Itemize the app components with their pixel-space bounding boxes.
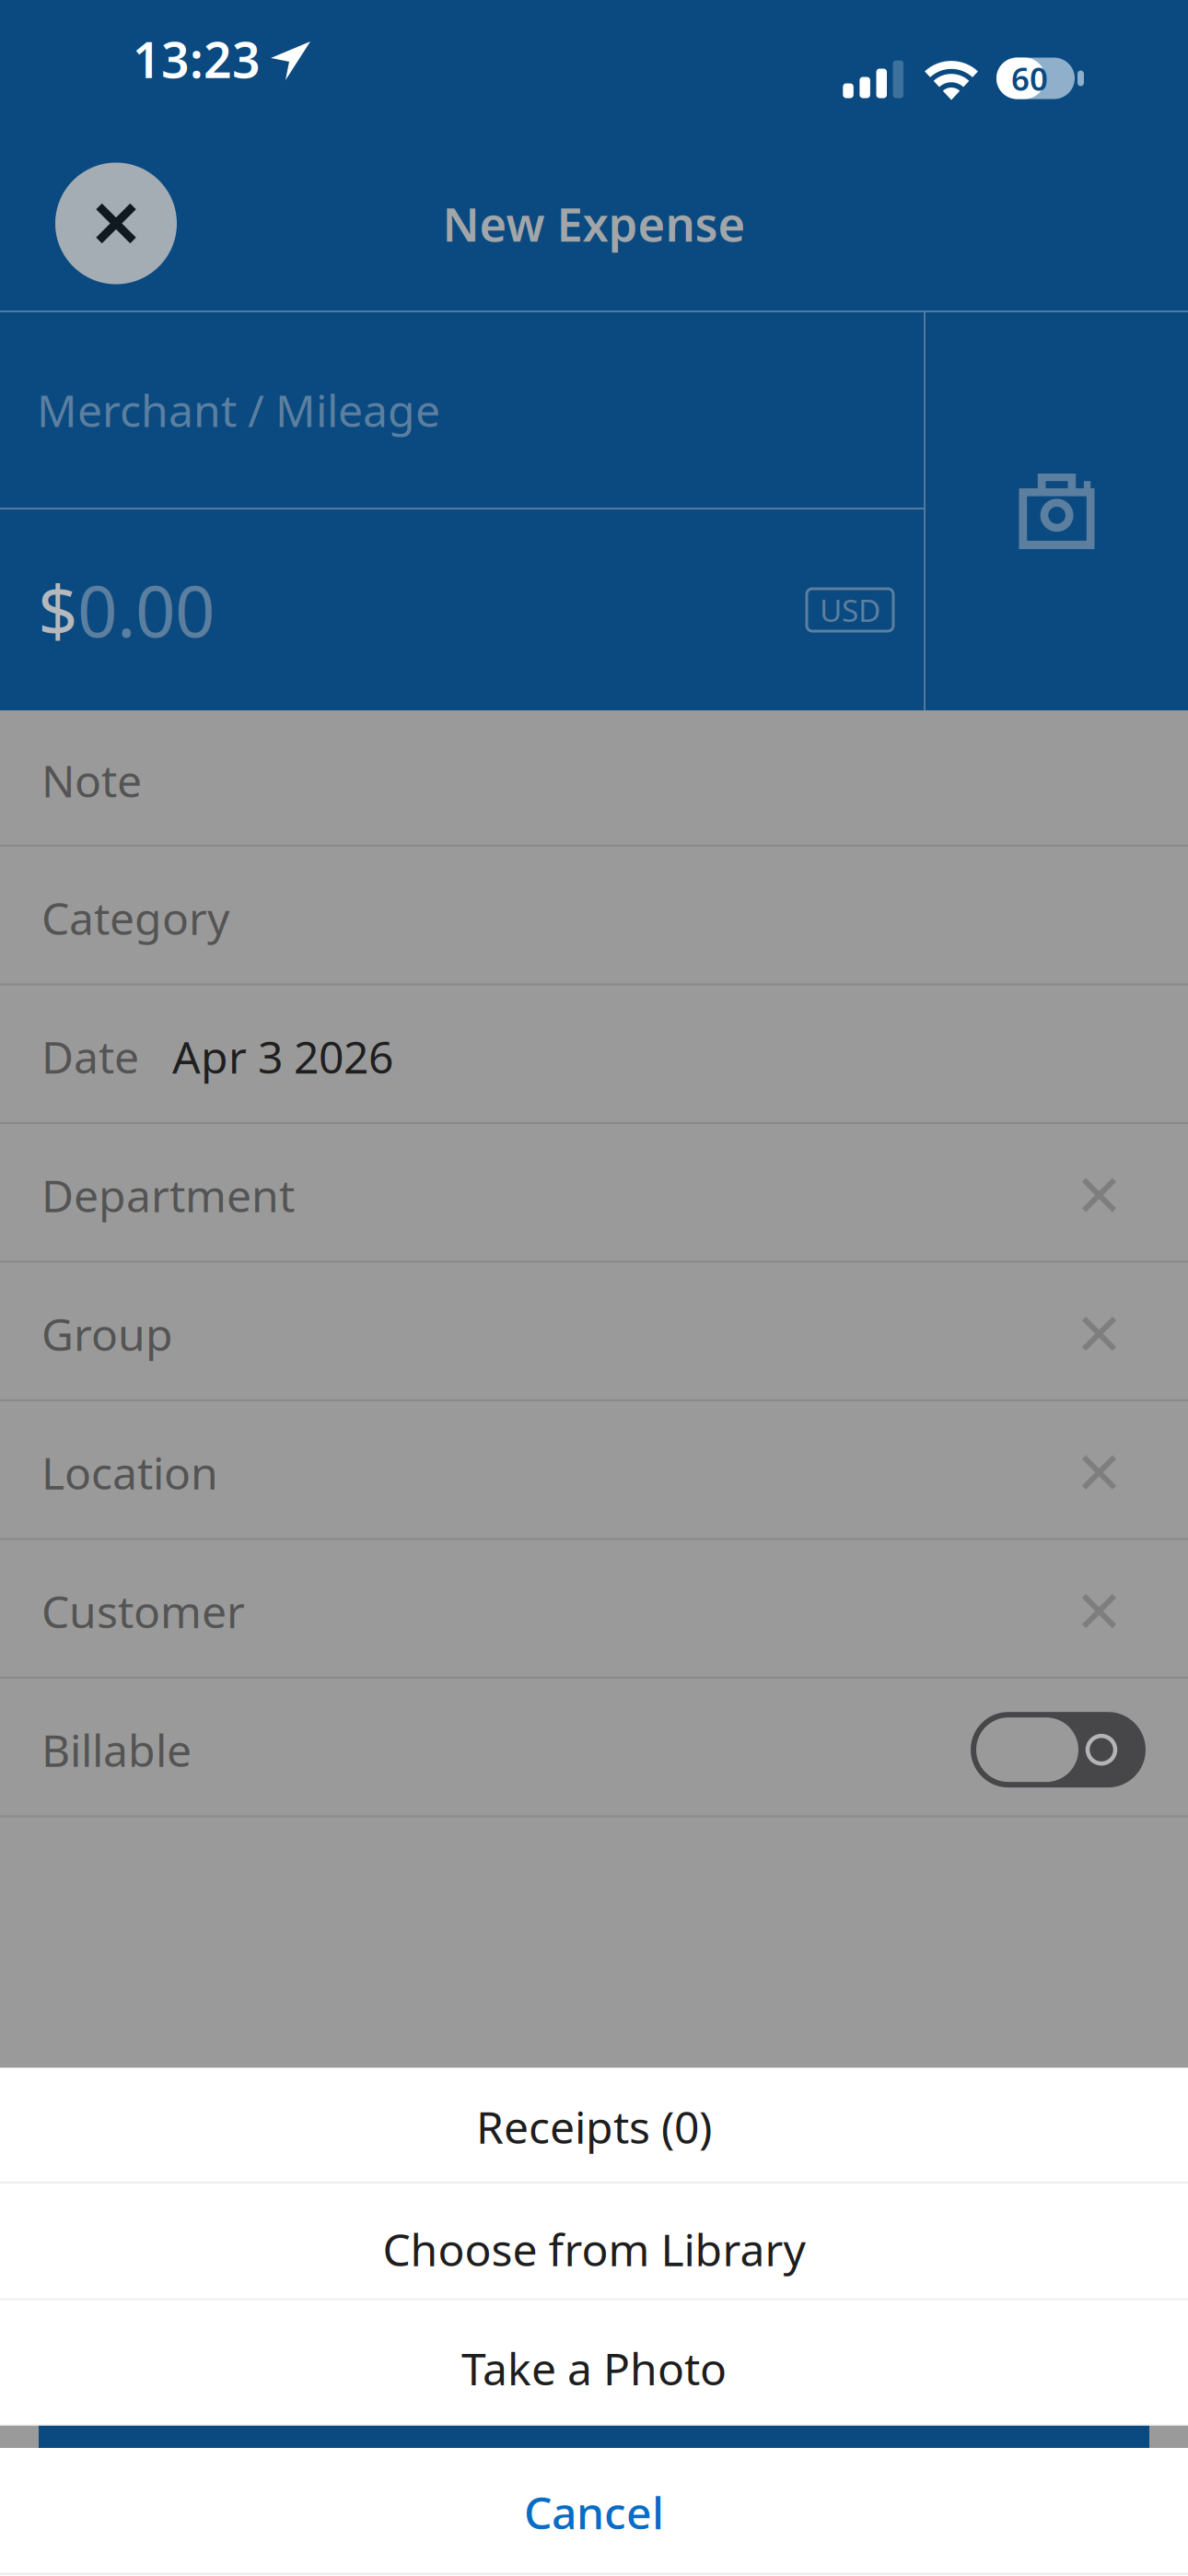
button[interactable]: Cancel <box>0 2448 1188 2573</box>
button[interactable]: Department <box>0 1124 1188 1263</box>
staticText: Merchant / Mileage <box>37 381 440 439</box>
staticText: Cancel <box>524 2483 664 2542</box>
staticText: Take a Photo <box>461 2339 727 2397</box>
staticText: New Expense <box>443 192 745 254</box>
button[interactable]: Receipts (0) <box>0 2069 1188 2182</box>
button[interactable]: Category <box>0 847 1188 985</box>
button[interactable]: Location <box>0 1401 1188 1540</box>
staticText: Location <box>41 1443 218 1502</box>
staticText: Note <box>41 751 142 810</box>
staticText: 60 <box>1011 57 1048 100</box>
button[interactable]: USD <box>807 589 893 631</box>
staticText: 13:23 <box>133 26 261 92</box>
staticText: Category <box>41 888 229 947</box>
button[interactable]: $ <box>0 509 807 710</box>
button[interactable]: Close <box>55 163 177 284</box>
staticText: Choose from Library <box>383 2220 805 2279</box>
button[interactable]: Group <box>0 1263 1188 1401</box>
staticText: USD <box>820 590 880 630</box>
staticText: $ <box>38 563 77 656</box>
staticText: Apr 3 2026 <box>172 1027 393 1086</box>
staticText: Group <box>41 1304 173 1363</box>
staticText: Date <box>41 1027 139 1086</box>
staticText: 0.00 <box>77 563 215 656</box>
button[interactable]: Date <box>0 985 1188 1124</box>
staticText: Billable <box>41 1720 192 1779</box>
button[interactable]: Attach receipt photo <box>926 312 1188 710</box>
button[interactable]: Billable <box>0 1679 1188 1817</box>
button[interactable]: Merchant / Mileage <box>0 312 924 508</box>
staticText: Customer <box>41 1582 245 1640</box>
button[interactable]: Take a Photo <box>0 2300 1188 2424</box>
button[interactable]: Note <box>0 710 1188 847</box>
button[interactable]: Customer <box>0 1540 1188 1679</box>
button[interactable]: Choose from Library <box>0 2183 1188 2298</box>
staticText: Receipts (0) <box>476 2097 712 2156</box>
staticText: Department <box>41 1166 295 1224</box>
